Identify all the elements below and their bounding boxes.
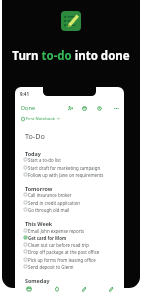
- button[interactable]: Notes: [15, 286, 43, 300]
- button[interactable]: Done: [21, 104, 36, 112]
- staticText: Get card for Mom: [28, 235, 67, 241]
- button[interactable]: Follow up with Jane on requirements: [24, 171, 120, 178]
- staticText: Call insurance broker: [28, 192, 72, 198]
- staticText: Clean out car before road trip: [28, 242, 89, 248]
- button[interactable]: Edit: [97, 286, 124, 300]
- staticText: Email John expense reports: [28, 228, 85, 234]
- button[interactable]: Calendar: [80, 104, 88, 112]
- staticText: Pick up forms from leasing office: [28, 257, 96, 263]
- staticText: Turn to-do into done: [12, 48, 130, 64]
- button[interactable]: Share: [66, 104, 74, 112]
- button[interactable]: Pick up forms from leasing office: [24, 256, 120, 263]
- staticText: Done: [21, 104, 36, 112]
- staticText: Send in credit application: [28, 200, 81, 206]
- button[interactable]: More options: [112, 104, 120, 112]
- staticText: Send deposit to Glenn: [28, 264, 74, 270]
- button[interactable]: Get card for Mom: [24, 234, 120, 241]
- button[interactable]: First Notebook: [21, 115, 60, 122]
- staticText: Go through old mail: [28, 207, 70, 213]
- button[interactable]: Reminders: [43, 286, 70, 300]
- staticText: This Week: [25, 220, 53, 227]
- staticText: To-Do: [25, 131, 45, 141]
- button[interactable]: Send in credit application: [24, 199, 120, 206]
- button[interactable]: Call insurance broker: [24, 191, 120, 198]
- staticText: Today: [25, 150, 41, 157]
- other: Notes app icon: [61, 11, 81, 31]
- button[interactable]: Email John expense reports: [24, 227, 120, 234]
- staticText: Drop off package at the post office: [28, 249, 100, 255]
- button[interactable]: Go through old mail: [24, 206, 120, 213]
- button[interactable]: Tasks: [70, 286, 97, 300]
- button[interactable]: Clean out car before road trip: [24, 241, 120, 248]
- staticText: First Notebook: [26, 116, 56, 122]
- button[interactable]: Send deposit to Glenn: [24, 263, 120, 270]
- button[interactable]: Start draft for marketing campaign: [24, 164, 120, 171]
- staticText: Start a to-do list: [28, 157, 61, 163]
- button[interactable]: Reminder: [95, 104, 103, 112]
- button[interactable]: Start a to-do list: [24, 156, 120, 163]
- staticText: 9:41: [20, 91, 29, 97]
- staticText: Someday: [25, 277, 50, 284]
- staticText: Tomorrow: [25, 185, 53, 192]
- staticText: Start draft for marketing campaign: [28, 165, 101, 171]
- button[interactable]: Drop off package at the post office: [24, 248, 120, 255]
- staticText: Follow up with Jane on requirements: [28, 172, 104, 178]
